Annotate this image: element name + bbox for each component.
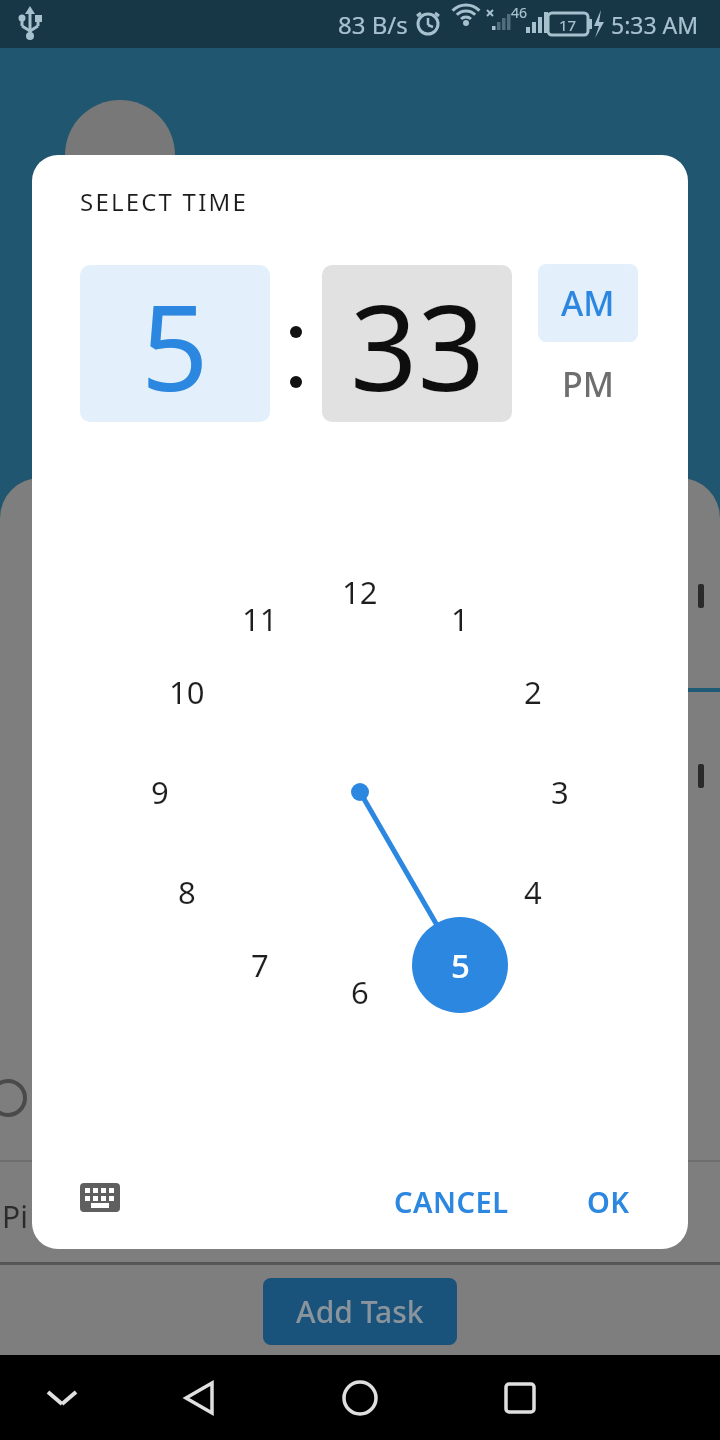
staticText: 83 B/s bbox=[338, 8, 408, 41]
staticText: 2 bbox=[524, 671, 542, 713]
staticText: 6 bbox=[351, 971, 369, 1013]
staticText: 46 bbox=[511, 3, 528, 22]
staticText: 1 bbox=[451, 598, 469, 640]
button[interactable]: 1 bbox=[430, 594, 490, 644]
staticText: 33 bbox=[350, 265, 485, 422]
button[interactable]: 5 bbox=[80, 265, 270, 422]
button[interactable]: 8 bbox=[157, 867, 217, 917]
staticText: Pi bbox=[2, 1196, 28, 1232]
button[interactable]: PM bbox=[538, 347, 638, 421]
staticText: 8 bbox=[178, 871, 196, 913]
button[interactable]: Add Task bbox=[263, 1278, 457, 1345]
button[interactable]: CANCEL bbox=[387, 1182, 515, 1216]
staticText: 11 bbox=[242, 598, 278, 640]
button[interactable]: 5 bbox=[430, 940, 490, 990]
button[interactable]: 12 bbox=[330, 567, 390, 617]
button[interactable] bbox=[0, 1355, 720, 1440]
staticText: OK bbox=[587, 1182, 630, 1216]
staticText: 5 bbox=[141, 265, 209, 422]
button[interactable]: 7 bbox=[230, 940, 290, 990]
staticText: 9 bbox=[151, 771, 169, 813]
staticText: 4 bbox=[524, 871, 542, 913]
button[interactable] bbox=[80, 1175, 124, 1219]
staticText: 17 bbox=[559, 15, 577, 35]
staticText: CANCEL bbox=[394, 1182, 509, 1216]
button[interactable]: 10 bbox=[157, 667, 217, 717]
button[interactable]: 6 bbox=[330, 967, 390, 1017]
button[interactable]: OK bbox=[572, 1182, 644, 1216]
staticText: 12 bbox=[342, 571, 378, 613]
staticText: 7 bbox=[251, 944, 269, 986]
button[interactable]: 2 bbox=[503, 667, 563, 717]
staticText: 10 bbox=[169, 671, 205, 713]
staticText: 3 bbox=[551, 771, 569, 813]
staticText: Add Task bbox=[296, 1291, 424, 1332]
staticText: SELECT TIME bbox=[80, 185, 248, 218]
staticText: 5:33 AM bbox=[611, 9, 699, 40]
staticText: AM bbox=[561, 280, 615, 326]
staticText: 5 bbox=[451, 943, 470, 988]
button[interactable]: AM bbox=[538, 264, 638, 342]
staticText: PM bbox=[562, 361, 614, 407]
button[interactable]: 11 bbox=[230, 594, 290, 644]
button[interactable]: 4 bbox=[503, 867, 563, 917]
button[interactable]: 3 bbox=[530, 767, 590, 817]
button[interactable]: 33 bbox=[322, 265, 512, 422]
button[interactable]: 9 bbox=[130, 767, 190, 817]
